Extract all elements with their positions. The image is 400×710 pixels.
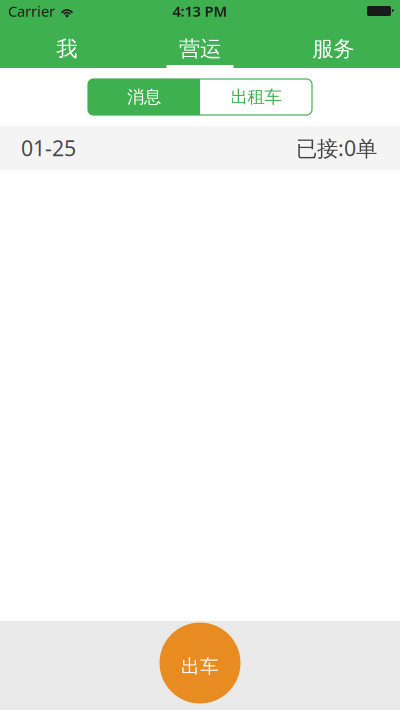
staticText: Carrier <box>8 1 55 21</box>
button[interactable]: 服务 <box>267 22 400 68</box>
staticText: 已接:0单 <box>296 134 377 162</box>
staticText: 出车 <box>181 655 219 678</box>
staticText: 4:13 PM <box>172 1 227 21</box>
staticText: 我 <box>56 36 77 62</box>
button[interactable]: 出车 <box>159 622 240 703</box>
staticText: 01-25 <box>21 134 76 162</box>
staticText: 服务 <box>312 36 354 62</box>
button[interactable]: 营运 <box>133 22 267 68</box>
staticText: 营运 <box>179 36 221 62</box>
staticText: 出租车 <box>230 86 281 108</box>
button[interactable]: 出租车 <box>200 79 312 115</box>
button[interactable]: 消息 <box>88 79 200 115</box>
button[interactable]: 我 <box>0 22 133 68</box>
staticText: 消息 <box>127 86 161 108</box>
